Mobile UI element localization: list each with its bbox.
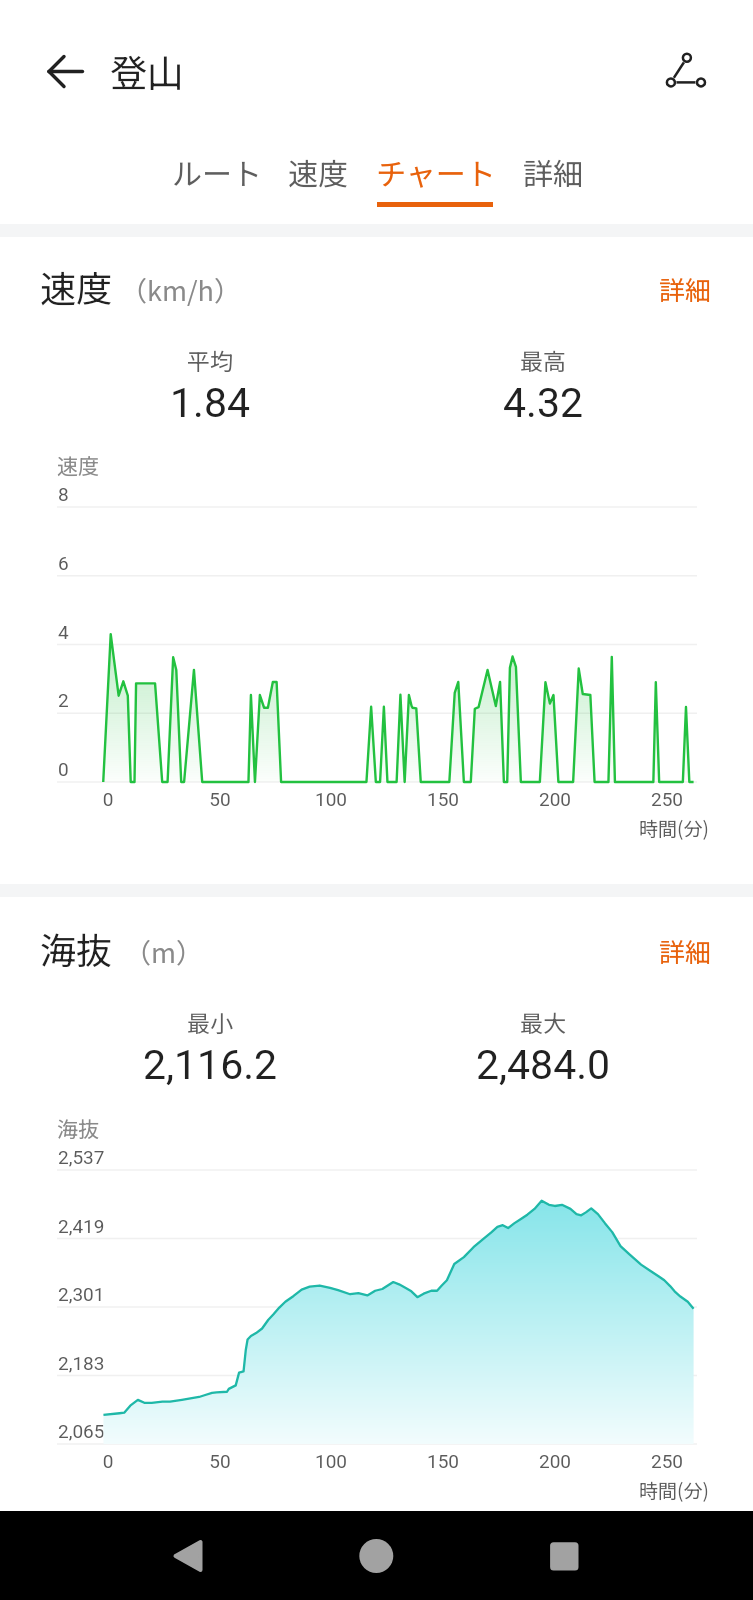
staticText: 4 <box>58 621 69 643</box>
staticText: 2,116.2 <box>60 1041 360 1089</box>
staticText: 150 <box>403 1450 483 1472</box>
staticText: 速度 <box>288 150 348 193</box>
button[interactable]: 詳細 <box>652 268 718 310</box>
staticText: 0 <box>58 758 69 780</box>
button[interactable]: Share <box>654 42 714 102</box>
staticText: 2,419 <box>58 1215 105 1237</box>
staticText: 詳細 <box>659 270 712 308</box>
staticText: 速度 <box>57 450 99 480</box>
staticText: 2,537 <box>58 1146 105 1168</box>
staticText: 海抜 <box>57 1113 99 1143</box>
staticText: ルート <box>172 150 262 193</box>
staticText: 150 <box>403 788 483 810</box>
staticText: 詳細 <box>523 150 583 193</box>
staticText: 最大 <box>443 1005 643 1038</box>
button[interactable]: 詳細 <box>652 930 718 972</box>
staticText: 2,065 <box>58 1420 105 1442</box>
staticText: 0 <box>68 1450 148 1472</box>
staticText: 詳細 <box>659 932 712 970</box>
staticText: （km/h） <box>120 270 241 309</box>
staticText: 250 <box>627 788 707 810</box>
staticText: チャート <box>376 150 496 193</box>
staticText: 平均 <box>110 343 310 376</box>
staticText: （m） <box>124 932 204 971</box>
button[interactable]: Home <box>346 1526 406 1586</box>
button[interactable]: チャート <box>363 140 508 208</box>
staticText: 100 <box>291 788 371 810</box>
staticText: 0 <box>68 788 148 810</box>
staticText: 200 <box>515 788 595 810</box>
button[interactable]: Recent apps <box>534 1526 594 1586</box>
button[interactable]: Back <box>25 41 89 105</box>
staticText: 速度 <box>40 260 113 312</box>
staticText: 2 <box>58 689 69 711</box>
staticText: 最小 <box>110 1005 310 1038</box>
staticText: 250 <box>627 1450 707 1472</box>
staticText: 8 <box>58 483 69 505</box>
staticText: 2,183 <box>58 1352 105 1374</box>
staticText: 時間(分) <box>639 1476 709 1504</box>
staticText: 2,301 <box>58 1283 105 1305</box>
staticText: 登山 <box>110 44 184 98</box>
button[interactable]: ルート <box>161 140 273 208</box>
staticText: 1.84 <box>60 379 360 427</box>
staticText: 海抜 <box>40 922 113 974</box>
button[interactable]: 詳細 <box>506 140 600 208</box>
staticText: 200 <box>515 1450 595 1472</box>
staticText: 4.32 <box>393 379 693 427</box>
staticText: 時間(分) <box>639 814 709 842</box>
button[interactable]: Back <box>158 1526 218 1586</box>
staticText: 50 <box>180 1450 260 1472</box>
staticText: 100 <box>291 1450 371 1472</box>
staticText: 2,484.0 <box>393 1041 693 1089</box>
staticText: 6 <box>58 552 69 574</box>
staticText: 最高 <box>443 343 643 376</box>
button[interactable]: 速度 <box>269 140 367 208</box>
staticText: 50 <box>180 788 260 810</box>
